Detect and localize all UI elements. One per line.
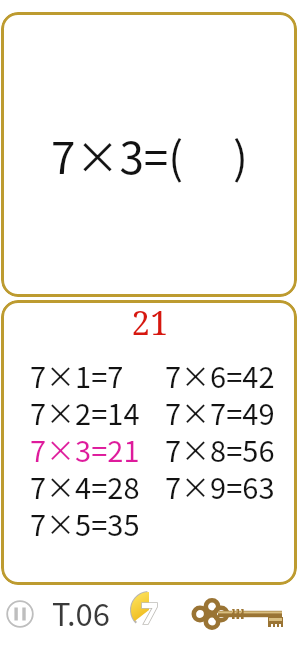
button[interactable]: Timer xyxy=(120,588,162,630)
staticText: 7×8=56 xyxy=(165,428,275,465)
staticText: 7×5=35 xyxy=(30,502,140,539)
staticText: ) xyxy=(233,123,248,187)
staticText: 21 xyxy=(2,300,297,345)
staticText: 7×1=7 xyxy=(30,354,124,391)
staticText: 7×4=28 xyxy=(30,465,140,502)
staticText: 7×6=42 xyxy=(165,354,275,391)
staticText: 7×3=( xyxy=(51,123,184,187)
staticText: 7×9=63 xyxy=(165,465,275,502)
staticText: 7×3=21 xyxy=(30,428,140,465)
button[interactable]: Pause xyxy=(5,599,34,628)
staticText: 7×2=14 xyxy=(30,391,140,428)
button[interactable]: Key xyxy=(192,600,292,636)
staticText: 7×7=49 xyxy=(165,391,275,428)
staticText: T.06 xyxy=(52,590,110,635)
button[interactable]: 7×3=( xyxy=(1,12,297,297)
